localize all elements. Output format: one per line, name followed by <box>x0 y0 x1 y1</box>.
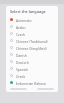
staticText: Arabic <box>16 25 26 29</box>
staticText: Czech <box>16 32 26 36</box>
button[interactable]: Danish <box>6 51 58 58</box>
button[interactable]: Czech <box>6 30 58 37</box>
staticText: Chinese (Simplified) <box>16 46 47 50</box>
staticText: Spanish <box>16 67 29 71</box>
staticText: Automatic <box>16 18 32 22</box>
staticText: Indonesian Bahasa <box>16 81 46 85</box>
button[interactable]: Indonesian Bahasa <box>6 79 58 86</box>
button[interactable]: Chinese (Traditional) <box>6 37 58 44</box>
staticText: Deutsch <box>16 60 29 64</box>
staticText: Chinese (Traditional) <box>16 39 48 43</box>
button[interactable]: Cancel <box>10 88 27 90</box>
button[interactable]: Automatic <box>6 16 58 23</box>
button[interactable]: Arabic <box>6 23 58 30</box>
button[interactable]: Deutsch <box>6 58 58 65</box>
button[interactable]: Greek <box>6 72 58 79</box>
staticText: Greek <box>16 74 26 78</box>
button[interactable]: Confirm <box>37 88 54 90</box>
staticText: Danish <box>16 53 27 57</box>
staticText: Select the language <box>10 9 46 14</box>
button[interactable]: Chinese (Simplified) <box>6 44 58 51</box>
button[interactable]: Spanish <box>6 65 58 72</box>
